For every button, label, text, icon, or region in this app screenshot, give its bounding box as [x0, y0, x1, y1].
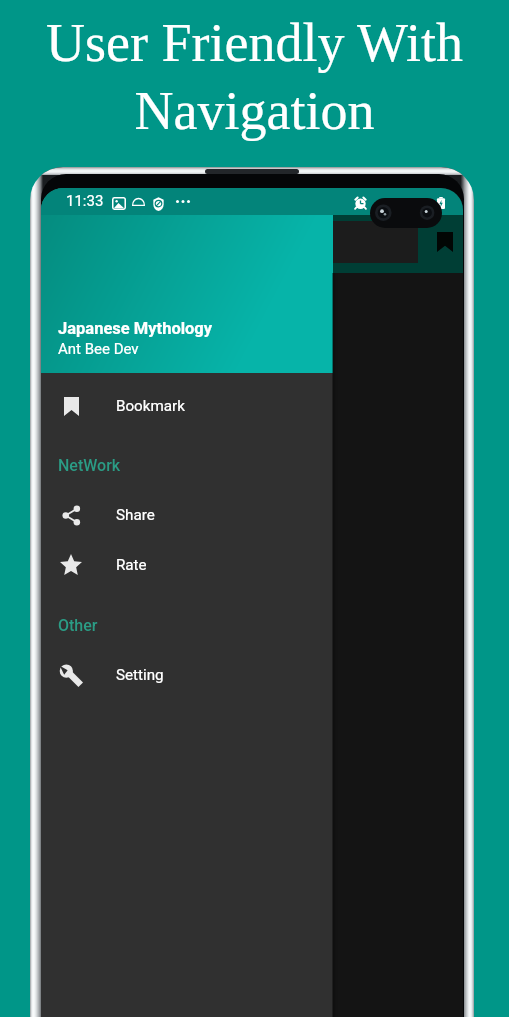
staticText: Rate [116, 556, 147, 574]
staticText: NetWork [58, 456, 121, 475]
staticText: Ant Bee Dev [58, 340, 139, 358]
staticText: Share [116, 506, 155, 524]
staticText: User Friendly With Navigation [46, 13, 463, 141]
button[interactable]: Bookmark [423, 220, 463, 264]
button[interactable]: Setting [41, 650, 333, 700]
staticText: Other [58, 616, 98, 635]
button[interactable]: Bookmark [41, 381, 333, 431]
staticText: Bookmark [116, 397, 185, 415]
staticText: Japanese Mythology [58, 319, 213, 338]
button[interactable]: Rate [41, 540, 333, 590]
staticText: Setting [116, 666, 164, 684]
button[interactable]: Share [41, 490, 333, 540]
staticText: 11:33 [66, 192, 104, 210]
